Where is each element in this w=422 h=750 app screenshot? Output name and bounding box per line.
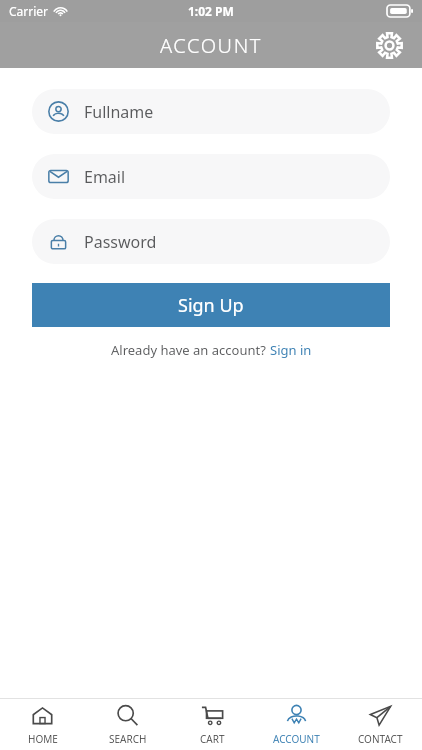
button[interactable]: ACCOUNT: [254, 699, 338, 750]
staticText: HOME: [28, 732, 58, 746]
staticText: ACCOUNT: [160, 32, 263, 59]
staticText: Carrier: [9, 3, 49, 19]
button[interactable]: Sign Up: [32, 283, 390, 327]
staticText: Already have an account?: [111, 341, 270, 359]
staticText: Sign Up: [178, 293, 244, 318]
staticText: Email: [84, 166, 126, 188]
staticText: SEARCH: [109, 732, 147, 746]
staticText: CART: [200, 732, 225, 746]
staticText: Sign in: [270, 341, 312, 359]
button[interactable]: HOME: [0, 699, 85, 750]
staticText: 1:02 PM: [188, 3, 234, 19]
button[interactable]: Password: [32, 219, 390, 264]
staticText: Fullname: [84, 101, 154, 123]
button[interactable]: CART: [170, 699, 254, 750]
staticText: Password: [84, 231, 157, 253]
button[interactable]: Email: [32, 154, 390, 199]
button[interactable]: Sign in: [270, 341, 312, 359]
button[interactable]: Fullname: [32, 89, 390, 134]
staticText: CONTACT: [358, 732, 403, 746]
button[interactable]: Settings: [372, 28, 406, 62]
button[interactable]: SEARCH: [85, 699, 170, 750]
button[interactable]: CONTACT: [338, 699, 422, 750]
staticText: ACCOUNT: [273, 732, 320, 746]
